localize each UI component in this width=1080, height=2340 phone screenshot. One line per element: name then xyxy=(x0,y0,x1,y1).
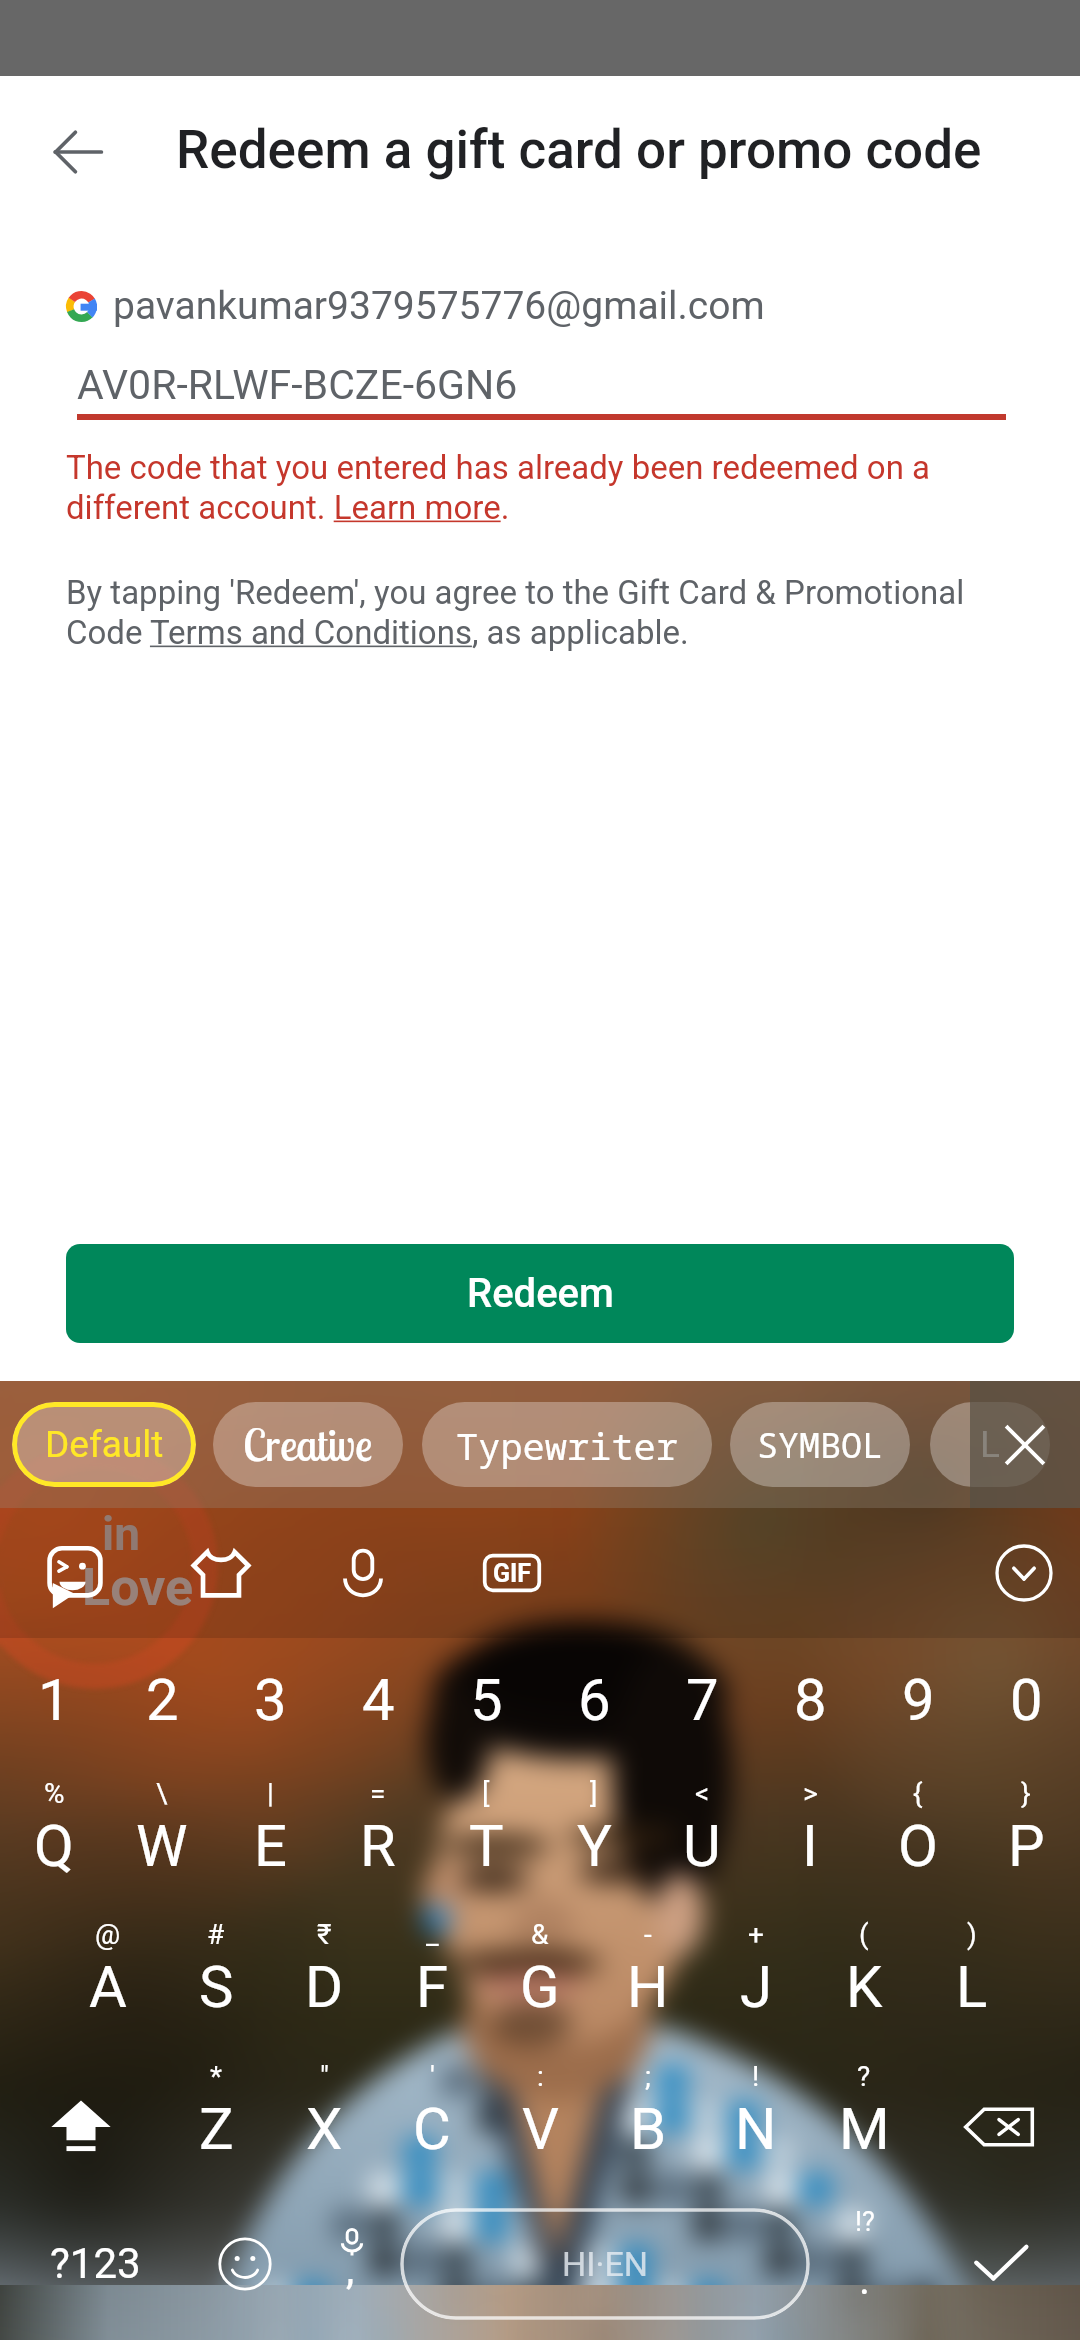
staticText: @ xyxy=(95,1918,121,1951)
button[interactable]: & xyxy=(486,1902,594,2040)
staticText: 7 xyxy=(686,1666,719,1734)
button[interactable]: ] xyxy=(540,1761,648,1899)
button[interactable]: ₹ xyxy=(270,1902,378,2040)
staticText: in xyxy=(102,1507,140,1561)
staticText: U xyxy=(683,1812,721,1880)
staticText: !? xyxy=(855,2206,875,2238)
button[interactable]: Themes xyxy=(190,1542,252,1604)
button[interactable]: { xyxy=(864,1761,972,1899)
staticText: GIF xyxy=(493,1559,532,1588)
staticText: Q xyxy=(34,1812,74,1880)
button[interactable]: , xyxy=(300,2186,400,2340)
staticText: 6 xyxy=(578,1666,611,1734)
button[interactable]: 6 xyxy=(540,1631,648,1769)
button[interactable]: * xyxy=(162,2044,270,2182)
button[interactable]: ' xyxy=(378,2044,486,2182)
button[interactable]: Collapse keyboard xyxy=(994,1543,1054,1603)
button[interactable]: : xyxy=(486,2044,594,2182)
button[interactable]: Enter xyxy=(920,2186,1080,2340)
staticText: O xyxy=(898,1812,938,1880)
button[interactable]: 5 xyxy=(432,1631,540,1769)
button[interactable]: _ xyxy=(378,1902,486,2040)
staticText: L xyxy=(956,1953,988,2021)
button[interactable]: [ xyxy=(432,1761,540,1899)
staticText: J xyxy=(740,1953,773,2021)
button[interactable]: " xyxy=(270,2044,378,2182)
button[interactable]: + xyxy=(702,1902,810,2040)
button[interactable]: - xyxy=(594,1902,702,2040)
staticText: ' xyxy=(430,2060,435,2093)
staticText: S xyxy=(199,1953,234,2021)
button[interactable]: | xyxy=(216,1761,324,1899)
button[interactable]: L xyxy=(930,1402,1050,1487)
staticText: ] xyxy=(590,1777,598,1810)
staticText: B xyxy=(630,2095,667,2163)
button[interactable]: Creative xyxy=(213,1402,403,1487)
button[interactable]: ) xyxy=(918,1902,1026,2040)
button[interactable]: } xyxy=(972,1761,1080,1899)
button[interactable]: 3 xyxy=(216,1631,324,1769)
button[interactable]: Shift xyxy=(0,2044,162,2182)
button[interactable]: 9 xyxy=(864,1631,972,1769)
button[interactable]: ; xyxy=(594,2044,702,2182)
button[interactable]: ? xyxy=(810,2044,918,2182)
button[interactable]: > xyxy=(756,1761,864,1899)
staticText: \ xyxy=(156,1777,168,1810)
button[interactable]: Stickers xyxy=(44,1542,106,1604)
staticText: M xyxy=(839,2095,890,2163)
staticText: ) xyxy=(967,1918,977,1951)
staticText: - xyxy=(644,1918,652,1951)
button[interactable]: Default xyxy=(12,1402,196,1487)
staticText: C xyxy=(413,2095,451,2163)
button[interactable]: Typewriter xyxy=(422,1402,712,1487)
staticText: ? xyxy=(857,2060,871,2093)
staticText: + xyxy=(748,1918,764,1951)
button[interactable]: Redeem xyxy=(66,1244,1014,1343)
button[interactable]: Emoji xyxy=(190,2186,300,2340)
staticText: , xyxy=(346,2245,355,2294)
button[interactable]: # xyxy=(162,1902,270,2040)
staticText: V xyxy=(522,2095,559,2163)
staticText: P xyxy=(1008,1812,1045,1880)
button[interactable]: Voice input xyxy=(332,1542,394,1604)
button[interactable]: ( xyxy=(810,1902,918,2040)
button[interactable]: !? xyxy=(810,2186,920,2340)
staticText: Y xyxy=(577,1812,612,1880)
button[interactable]: ! xyxy=(702,2044,810,2182)
staticText: By tapping 'Redeem', you agree to the Gi… xyxy=(66,573,1012,652)
staticText: Redeem xyxy=(467,1270,614,1317)
button[interactable]: Close font bar xyxy=(970,1381,1080,1508)
staticText: I xyxy=(802,1812,818,1880)
staticText: F xyxy=(416,1953,449,2021)
staticText: 2 xyxy=(146,1666,179,1734)
staticText: Redeem a gift card or promo code xyxy=(176,119,982,181)
button[interactable]: 2 xyxy=(108,1631,216,1769)
staticText: Typewriter xyxy=(456,1420,678,1470)
button[interactable]: Backspace xyxy=(918,2044,1080,2182)
staticText: ( xyxy=(859,1918,869,1951)
staticText: Creative xyxy=(243,1417,373,1472)
staticText: SYMBOL xyxy=(757,1421,884,1469)
button[interactable]: 0 xyxy=(972,1631,1080,1769)
button[interactable]: GIF xyxy=(481,1542,543,1604)
button[interactable]: 7 xyxy=(648,1631,756,1769)
staticText: H xyxy=(627,1953,669,2021)
button[interactable]: = xyxy=(324,1761,432,1899)
button[interactable]: 4 xyxy=(324,1631,432,1769)
button[interactable]: \ xyxy=(108,1761,216,1899)
button[interactable]: < xyxy=(648,1761,756,1899)
button[interactable]: % xyxy=(0,1761,108,1899)
button[interactable]: @ xyxy=(54,1902,162,2040)
button[interactable]: ?123 xyxy=(0,2186,190,2340)
staticText: 8 xyxy=(794,1666,827,1734)
staticText: R xyxy=(360,1812,396,1880)
staticText: 0 xyxy=(1010,1666,1043,1734)
button[interactable]: HI·EN xyxy=(400,2208,810,2320)
button[interactable]: SYMBOL xyxy=(730,1402,910,1487)
staticText: " xyxy=(320,2060,329,2093)
button[interactable]: Back xyxy=(30,104,126,200)
button[interactable]: 8 xyxy=(756,1631,864,1769)
staticText: . xyxy=(859,2255,871,2304)
staticText: L xyxy=(980,1423,1000,1466)
button[interactable]: 1 xyxy=(0,1631,108,1769)
